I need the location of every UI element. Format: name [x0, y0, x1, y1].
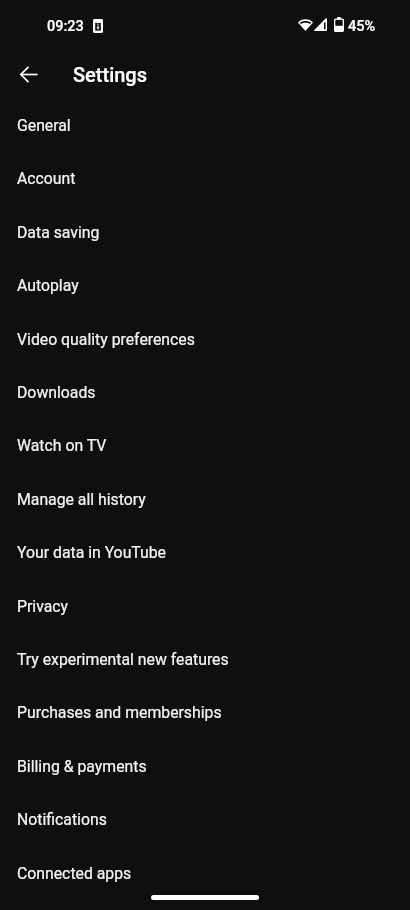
staticText: Downloads — [17, 383, 96, 402]
staticText: Manage all history — [17, 490, 146, 509]
button[interactable]: Billing & payments — [0, 740, 410, 793]
button[interactable]: Your data in YouTube — [0, 526, 410, 579]
button[interactable]: Privacy — [0, 580, 410, 633]
staticText: General — [17, 116, 71, 135]
staticText: Your data in YouTube — [17, 543, 166, 562]
button[interactable]: Account — [0, 152, 410, 205]
staticText: Connected apps — [17, 864, 132, 883]
button[interactable]: General — [0, 99, 410, 152]
button[interactable]: Connected apps — [0, 847, 410, 900]
staticText: Video quality preferences — [17, 330, 195, 349]
staticText: Settings — [73, 63, 148, 86]
button[interactable]: Downloads — [0, 366, 410, 419]
staticText: 45% — [348, 18, 376, 35]
staticText: Watch on TV — [17, 436, 107, 455]
staticText: Try experimental new features — [17, 650, 229, 669]
button[interactable]: Notifications — [0, 793, 410, 846]
staticText: Billing & payments — [17, 757, 147, 776]
button[interactable]: Watch on TV — [0, 419, 410, 472]
staticText: 09:23 — [47, 18, 84, 35]
button[interactable]: Autoplay — [0, 259, 410, 312]
staticText: Autoplay — [17, 276, 79, 295]
staticText: Privacy — [17, 597, 69, 616]
button[interactable]: Manage all history — [0, 473, 410, 526]
staticText: Account — [17, 169, 76, 188]
button[interactable]: Video quality preferences — [0, 313, 410, 366]
staticText: Notifications — [17, 810, 107, 829]
button[interactable]: Purchases and memberships — [0, 686, 410, 739]
button[interactable]: Back — [8, 51, 54, 97]
button[interactable]: Data saving — [0, 206, 410, 259]
staticText: Data saving — [17, 223, 100, 242]
button[interactable]: Try experimental new features — [0, 633, 410, 686]
staticText: Purchases and memberships — [17, 703, 222, 722]
